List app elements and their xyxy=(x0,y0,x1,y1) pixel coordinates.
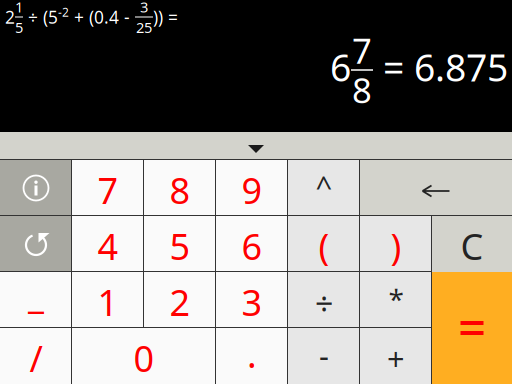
button[interactable]: - xyxy=(288,328,360,384)
button[interactable]: C xyxy=(432,216,512,272)
button[interactable]: Backspace xyxy=(360,160,512,216)
button[interactable]: _ xyxy=(0,272,72,328)
button[interactable]: 3 xyxy=(216,272,288,328)
staticText: - xyxy=(319,335,329,375)
button[interactable]: 0 xyxy=(72,328,216,384)
staticText: 1 xyxy=(15,0,23,16)
button[interactable]: ÷ xyxy=(288,272,360,328)
button[interactable]: Hide keypad xyxy=(0,132,512,160)
staticText: 3 xyxy=(241,278,262,326)
button[interactable]: 1 xyxy=(72,272,144,328)
staticText: _ xyxy=(28,270,44,318)
button[interactable]: + xyxy=(360,328,432,384)
staticText: 5 xyxy=(15,17,23,37)
button[interactable]: 4 xyxy=(72,216,144,272)
button[interactable]: . xyxy=(216,328,288,384)
button[interactable]: * xyxy=(360,272,432,328)
staticText: 6 xyxy=(241,222,262,270)
button[interactable]: 9 xyxy=(216,160,288,216)
staticText: ) xyxy=(390,222,401,270)
staticText: ^ xyxy=(315,166,332,205)
staticText: + (0.4 - xyxy=(69,5,135,28)
button[interactable]: / xyxy=(0,328,72,384)
staticText: ÷ (5 xyxy=(23,5,58,28)
button[interactable]: ) xyxy=(360,216,432,272)
staticText: 0 xyxy=(133,334,154,382)
button[interactable]: ( xyxy=(288,216,360,272)
staticText: ÷ xyxy=(315,282,333,324)
staticText: / xyxy=(29,334,42,382)
staticText: . xyxy=(247,330,257,378)
staticText: * xyxy=(388,280,403,318)
staticText: )) = xyxy=(153,5,178,28)
staticText: -2 xyxy=(58,4,69,20)
staticText: 7 xyxy=(97,166,118,214)
staticText: 3 xyxy=(140,0,148,16)
staticText: 7 xyxy=(352,27,372,73)
staticText: ( xyxy=(318,222,329,270)
staticText: 6 xyxy=(330,42,351,92)
staticText: 8 xyxy=(169,166,190,214)
button[interactable]: 6 xyxy=(216,216,288,272)
staticText: 25 xyxy=(136,17,152,37)
staticText: = 6.875 xyxy=(373,42,508,92)
staticText: 4 xyxy=(97,222,118,270)
staticText: 2 xyxy=(169,278,190,326)
staticText: 8 xyxy=(352,67,372,113)
button[interactable]: 7 xyxy=(72,160,144,216)
button[interactable]: Undo xyxy=(0,216,72,272)
staticText: 1 xyxy=(97,278,118,326)
button[interactable]: Info xyxy=(0,160,72,216)
staticText: + xyxy=(387,338,405,378)
staticText: C xyxy=(460,222,483,270)
button[interactable]: 2 xyxy=(144,272,216,328)
button[interactable]: 5 xyxy=(144,216,216,272)
staticText: 9 xyxy=(241,166,262,214)
staticText: 2 xyxy=(5,5,15,28)
button[interactable]: Equals xyxy=(432,272,512,384)
button[interactable]: 8 xyxy=(144,160,216,216)
button[interactable]: ^ xyxy=(288,160,360,216)
staticText: 5 xyxy=(169,222,190,270)
